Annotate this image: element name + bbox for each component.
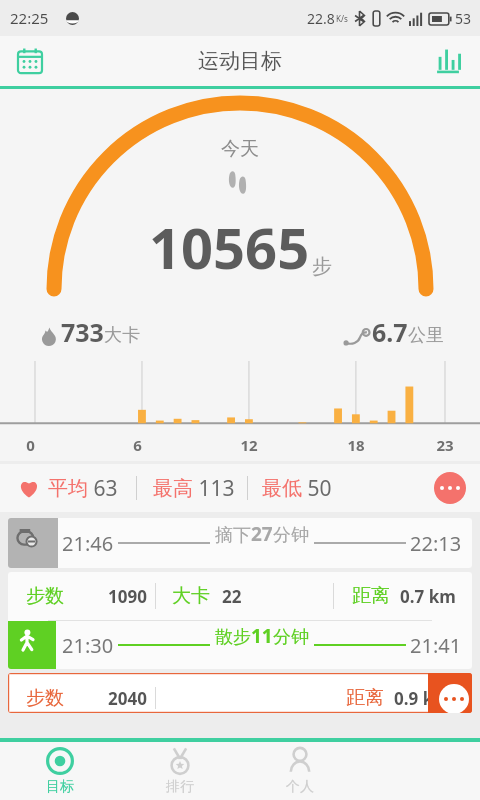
staticText: 27 [251, 521, 273, 547]
staticText: 11 [251, 623, 273, 649]
staticText: 22.8 [307, 9, 335, 28]
button[interactable]: 步数 [8, 572, 472, 669]
staticText: 分钟 [273, 626, 309, 649]
staticText: 22:13 [410, 530, 462, 557]
staticText: 0 [26, 435, 35, 455]
staticText: 步数 [26, 686, 64, 710]
button[interactable]: 21:46 [8, 518, 472, 568]
staticText: 63 [88, 474, 118, 503]
staticText: 步数 [26, 584, 64, 608]
staticText: 0.7 km [400, 585, 456, 608]
staticText: 22 [222, 585, 242, 608]
staticText: 最低 [262, 476, 302, 501]
button[interactable]: 目标 [0, 742, 120, 800]
staticText: 6 [133, 435, 142, 455]
staticText: 21:41 [410, 632, 462, 659]
staticText: 平均 [48, 476, 88, 501]
staticText: 大卡 [172, 584, 210, 608]
button[interactable]: More [434, 472, 466, 504]
staticText: 22:25 [10, 8, 49, 28]
staticText: 距离 [346, 686, 384, 710]
staticText: 12 [240, 435, 258, 455]
staticText: 2040 [108, 687, 147, 710]
button[interactable]: Statistics [426, 39, 470, 83]
staticText: 目标 [46, 778, 74, 796]
staticText: 摘下 [215, 524, 251, 547]
staticText: 距离 [352, 584, 390, 608]
button[interactable]: 个人 [240, 742, 360, 800]
button[interactable]: 排行 [120, 742, 240, 800]
button[interactable]: Calendar [8, 39, 52, 83]
button[interactable]: 步数 [8, 673, 472, 713]
staticText: 10565 [149, 209, 310, 285]
staticText: 最高 [153, 476, 193, 501]
staticText: 1090 [108, 585, 147, 608]
staticText: 21:46 [62, 530, 114, 557]
staticText: 0.9 k [394, 687, 434, 710]
staticText: 113 [193, 474, 235, 503]
staticText: 分钟 [273, 524, 309, 547]
staticText: 6.7 [372, 315, 408, 349]
staticText: 排行 [166, 778, 194, 796]
staticText: 散步 [215, 626, 251, 649]
button[interactable]: 平均 [0, 464, 480, 512]
staticText: 18 [347, 435, 365, 455]
staticText: 今天 [221, 137, 259, 161]
staticText: 53 [455, 9, 472, 28]
staticText: 23 [436, 435, 454, 455]
staticText: 运动目标 [198, 48, 282, 74]
staticText: 个人 [286, 778, 314, 796]
staticText: 733 [61, 315, 104, 349]
staticText: 公里 [408, 324, 444, 347]
staticText: 21:30 [62, 632, 114, 659]
button[interactable]: More options [439, 684, 469, 713]
staticText: 步 [312, 254, 332, 279]
staticText: K/s [336, 13, 348, 24]
staticText: 大卡 [104, 324, 140, 347]
staticText: 50 [302, 474, 332, 503]
